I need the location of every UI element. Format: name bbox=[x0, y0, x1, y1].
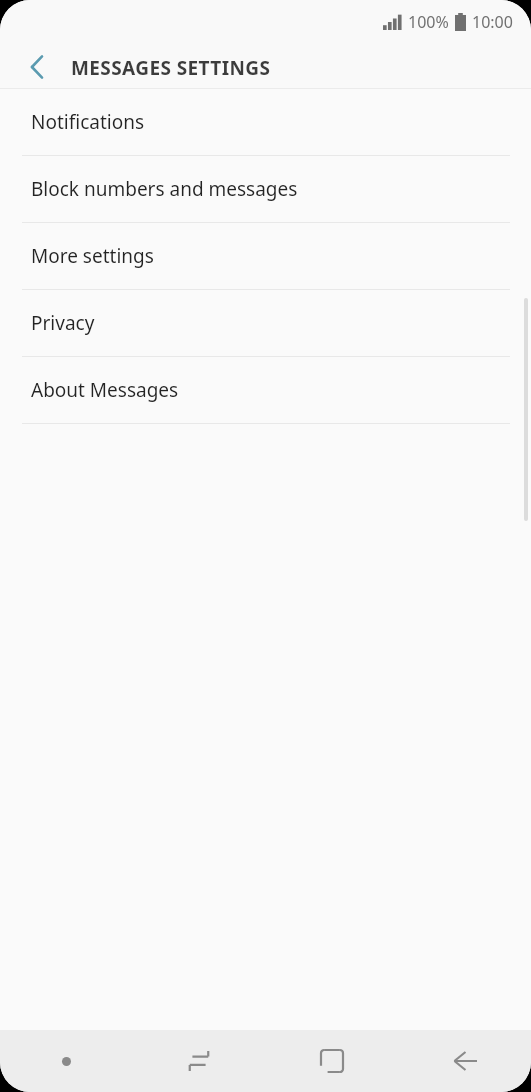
button[interactable]: More settings bbox=[0, 223, 531, 289]
button[interactable]: Privacy bbox=[0, 290, 531, 356]
staticText: Privacy bbox=[31, 310, 95, 336]
button[interactable]: Back bbox=[398, 1030, 531, 1092]
staticText: About Messages bbox=[31, 377, 179, 403]
staticText: 100% bbox=[408, 11, 449, 33]
staticText: Block numbers and messages bbox=[31, 176, 298, 202]
staticText: Notifications bbox=[31, 109, 145, 135]
staticText: More settings bbox=[31, 243, 154, 269]
staticText: 10:00 bbox=[472, 11, 513, 33]
button[interactable]: Home bbox=[265, 1030, 398, 1092]
button[interactable]: About Messages bbox=[0, 357, 531, 423]
staticText: MESSAGES SETTINGS bbox=[71, 55, 271, 81]
button[interactable]: Navigation hint bbox=[0, 1030, 132, 1092]
button[interactable]: Notifications bbox=[0, 89, 531, 155]
button[interactable]: Block numbers and messages bbox=[0, 156, 531, 222]
button[interactable]: Back bbox=[14, 44, 60, 89]
button[interactable]: Recent apps bbox=[132, 1030, 265, 1092]
